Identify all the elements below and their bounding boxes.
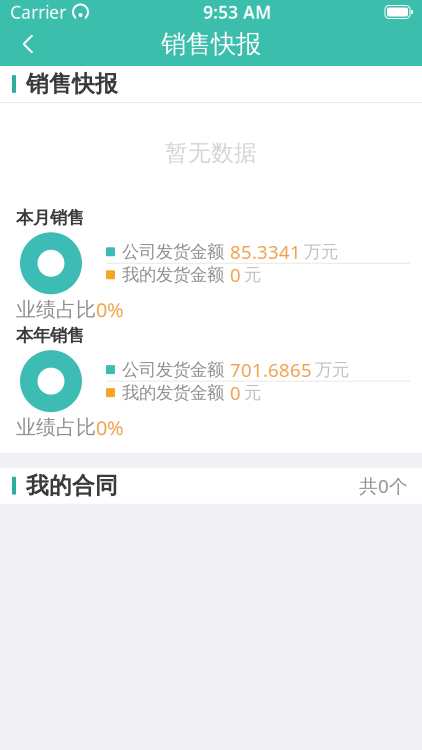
staticText: 0% — [96, 414, 124, 441]
button[interactable]: 返回 — [6, 22, 50, 66]
staticText: 销售快报 — [26, 70, 118, 98]
staticText: 0 — [230, 380, 241, 405]
staticText: 我的合同 — [26, 472, 118, 500]
staticText: 701.6865 — [230, 357, 312, 382]
staticText: 万元 — [315, 359, 349, 380]
staticText: 暂无数据 — [165, 139, 257, 167]
staticText: 85.3341 — [230, 239, 301, 264]
staticText: 公司发货金额 — [122, 359, 224, 380]
staticText: 万元 — [304, 241, 338, 262]
staticText: 9:53 AM — [203, 0, 271, 23]
staticText: 业绩占比 — [16, 415, 96, 440]
staticText: 本年销售 — [16, 325, 84, 346]
staticText: 我的发货金额 — [122, 264, 224, 285]
staticText: 0 — [230, 262, 241, 287]
staticText: 共0个 — [359, 473, 408, 498]
staticText: 元 — [244, 264, 261, 285]
staticText: 元 — [244, 382, 261, 403]
staticText: 0% — [96, 296, 124, 323]
staticText: 公司发货金额 — [122, 241, 224, 262]
button[interactable]: 我的合同 — [0, 468, 422, 504]
staticText: 本月销售 — [16, 207, 84, 228]
staticText: 业绩占比 — [16, 297, 96, 322]
staticText: 销售快报 — [161, 28, 261, 59]
staticText: Carrier — [10, 0, 66, 23]
staticText: 我的发货金额 — [122, 382, 224, 403]
